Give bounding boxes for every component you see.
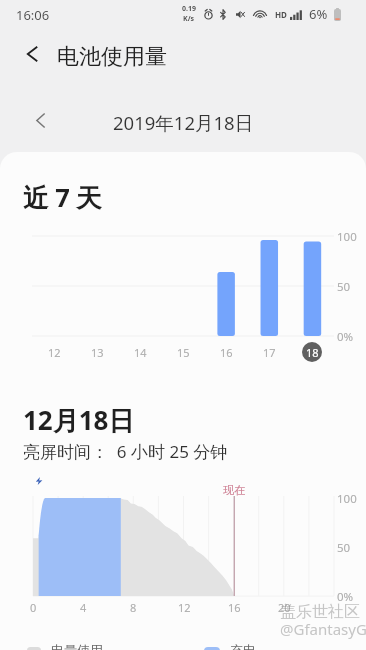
staticText: 50: [337, 540, 351, 556]
staticText: 16: [220, 345, 233, 360]
staticText: 0%: [337, 329, 354, 345]
staticText: 4: [80, 600, 87, 615]
staticText: 近 7 天: [23, 180, 102, 215]
staticText: 电量使用: [51, 642, 103, 650]
staticText: 14: [134, 345, 147, 360]
staticText: 现在: [223, 483, 245, 497]
staticText: 亮屏时间： 6 小时 25 分钟: [23, 440, 228, 463]
staticText: 12月18日: [23, 402, 135, 438]
button[interactable]: Back: [14, 36, 50, 72]
staticText: 6%: [309, 5, 328, 23]
staticText: 电池使用量: [57, 43, 167, 71]
button[interactable]: Previous day: [24, 104, 56, 136]
staticText: 50: [337, 279, 351, 295]
staticText: 2019年12月18日: [113, 110, 254, 135]
staticText: 100: [337, 229, 357, 245]
staticText: 100: [337, 491, 357, 507]
staticText: 12: [48, 345, 61, 360]
staticText: 0: [30, 600, 37, 615]
staticText: 16:06: [16, 6, 50, 24]
staticText: @GfantasyG: [280, 619, 366, 639]
staticText: 20: [278, 600, 291, 615]
staticText: HD: [275, 9, 287, 20]
staticText: 8: [130, 600, 137, 615]
staticText: 0%: [337, 589, 354, 605]
staticText: 18: [306, 345, 319, 360]
staticText: 13: [91, 345, 104, 360]
staticText: 17: [263, 345, 276, 360]
staticText: 15: [177, 345, 190, 360]
staticText: 0.19: [182, 4, 196, 14]
staticText: 12: [178, 600, 191, 615]
staticText: 盖乐世社区: [280, 602, 360, 622]
staticText: K/s: [183, 14, 195, 24]
staticText: 充电: [230, 642, 256, 650]
staticText: 16: [228, 600, 241, 615]
